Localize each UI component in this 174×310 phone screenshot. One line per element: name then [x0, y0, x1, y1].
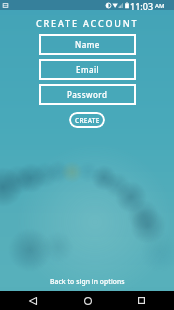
staticText: Password	[67, 89, 108, 100]
button[interactable]: Back to sign in options	[0, 277, 174, 286]
button[interactable]: Password	[39, 84, 136, 105]
staticText: 11:03	[130, 0, 154, 10]
staticText: CREATE	[75, 116, 100, 125]
button[interactable]: Name	[39, 34, 136, 55]
staticText: CREATE ACCOUNT	[36, 17, 139, 29]
button[interactable]: Back	[21, 291, 44, 310]
staticText: Back to sign in options	[50, 277, 125, 286]
button[interactable]: CREATE	[69, 112, 105, 128]
button[interactable]: Recent apps	[130, 291, 153, 310]
staticText: AM	[155, 2, 165, 10]
staticText: Email	[76, 64, 100, 75]
staticText: Name	[75, 39, 100, 50]
button[interactable]: Email	[39, 59, 136, 80]
button[interactable]: Home	[76, 291, 99, 310]
